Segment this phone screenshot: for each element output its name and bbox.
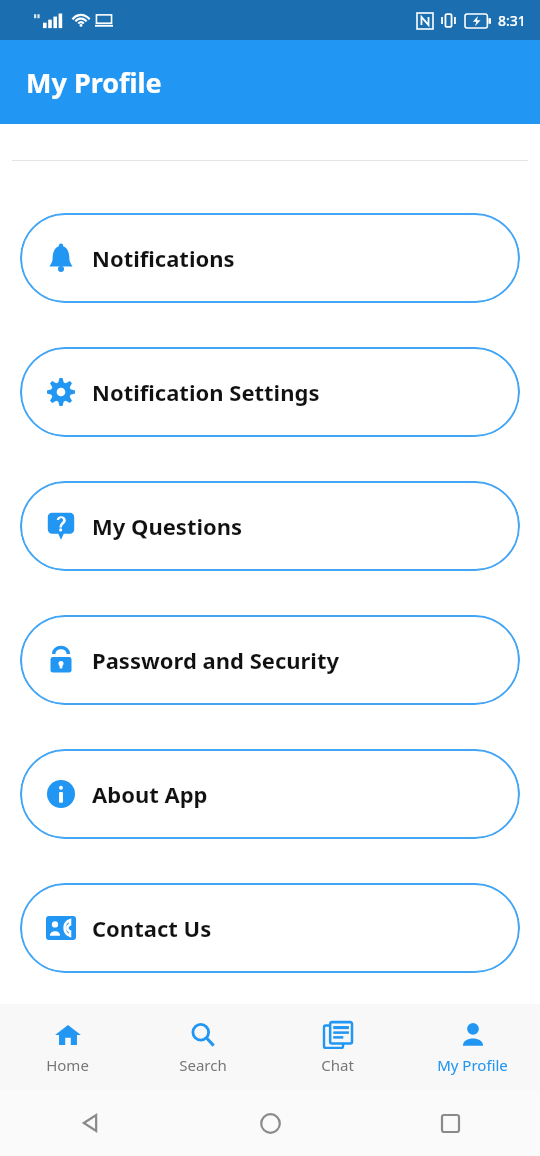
staticText: My Questions <box>92 511 243 541</box>
staticText: My Profile <box>26 64 162 101</box>
button[interactable]: Home <box>0 1012 135 1083</box>
button[interactable]: Contact Us <box>20 883 520 973</box>
button[interactable]: Chat <box>270 1012 405 1083</box>
staticText: Notifications <box>92 243 235 273</box>
staticText: Home <box>46 1055 89 1075</box>
staticText: Search <box>179 1055 227 1075</box>
staticText: Contact Us <box>92 913 212 943</box>
staticText: My Profile <box>437 1055 508 1075</box>
button[interactable]: My Questions <box>20 481 520 571</box>
button[interactable]: Search <box>135 1012 270 1083</box>
button[interactable]: Home <box>180 1113 360 1134</box>
staticText: 8:31 <box>498 11 526 30</box>
staticText: Notification Settings <box>92 377 320 407</box>
button[interactable]: My Profile <box>405 1012 540 1083</box>
staticText: About App <box>92 779 208 809</box>
staticText: Chat <box>321 1055 354 1075</box>
button[interactable]: Notification Settings <box>20 347 520 437</box>
staticText: Password and Security <box>92 645 340 675</box>
button[interactable]: Password and Security <box>20 615 520 705</box>
button[interactable]: Recent apps <box>360 1114 540 1133</box>
button[interactable]: Back <box>0 1112 180 1134</box>
button[interactable]: Notifications <box>20 213 520 303</box>
button[interactable]: About App <box>20 749 520 839</box>
